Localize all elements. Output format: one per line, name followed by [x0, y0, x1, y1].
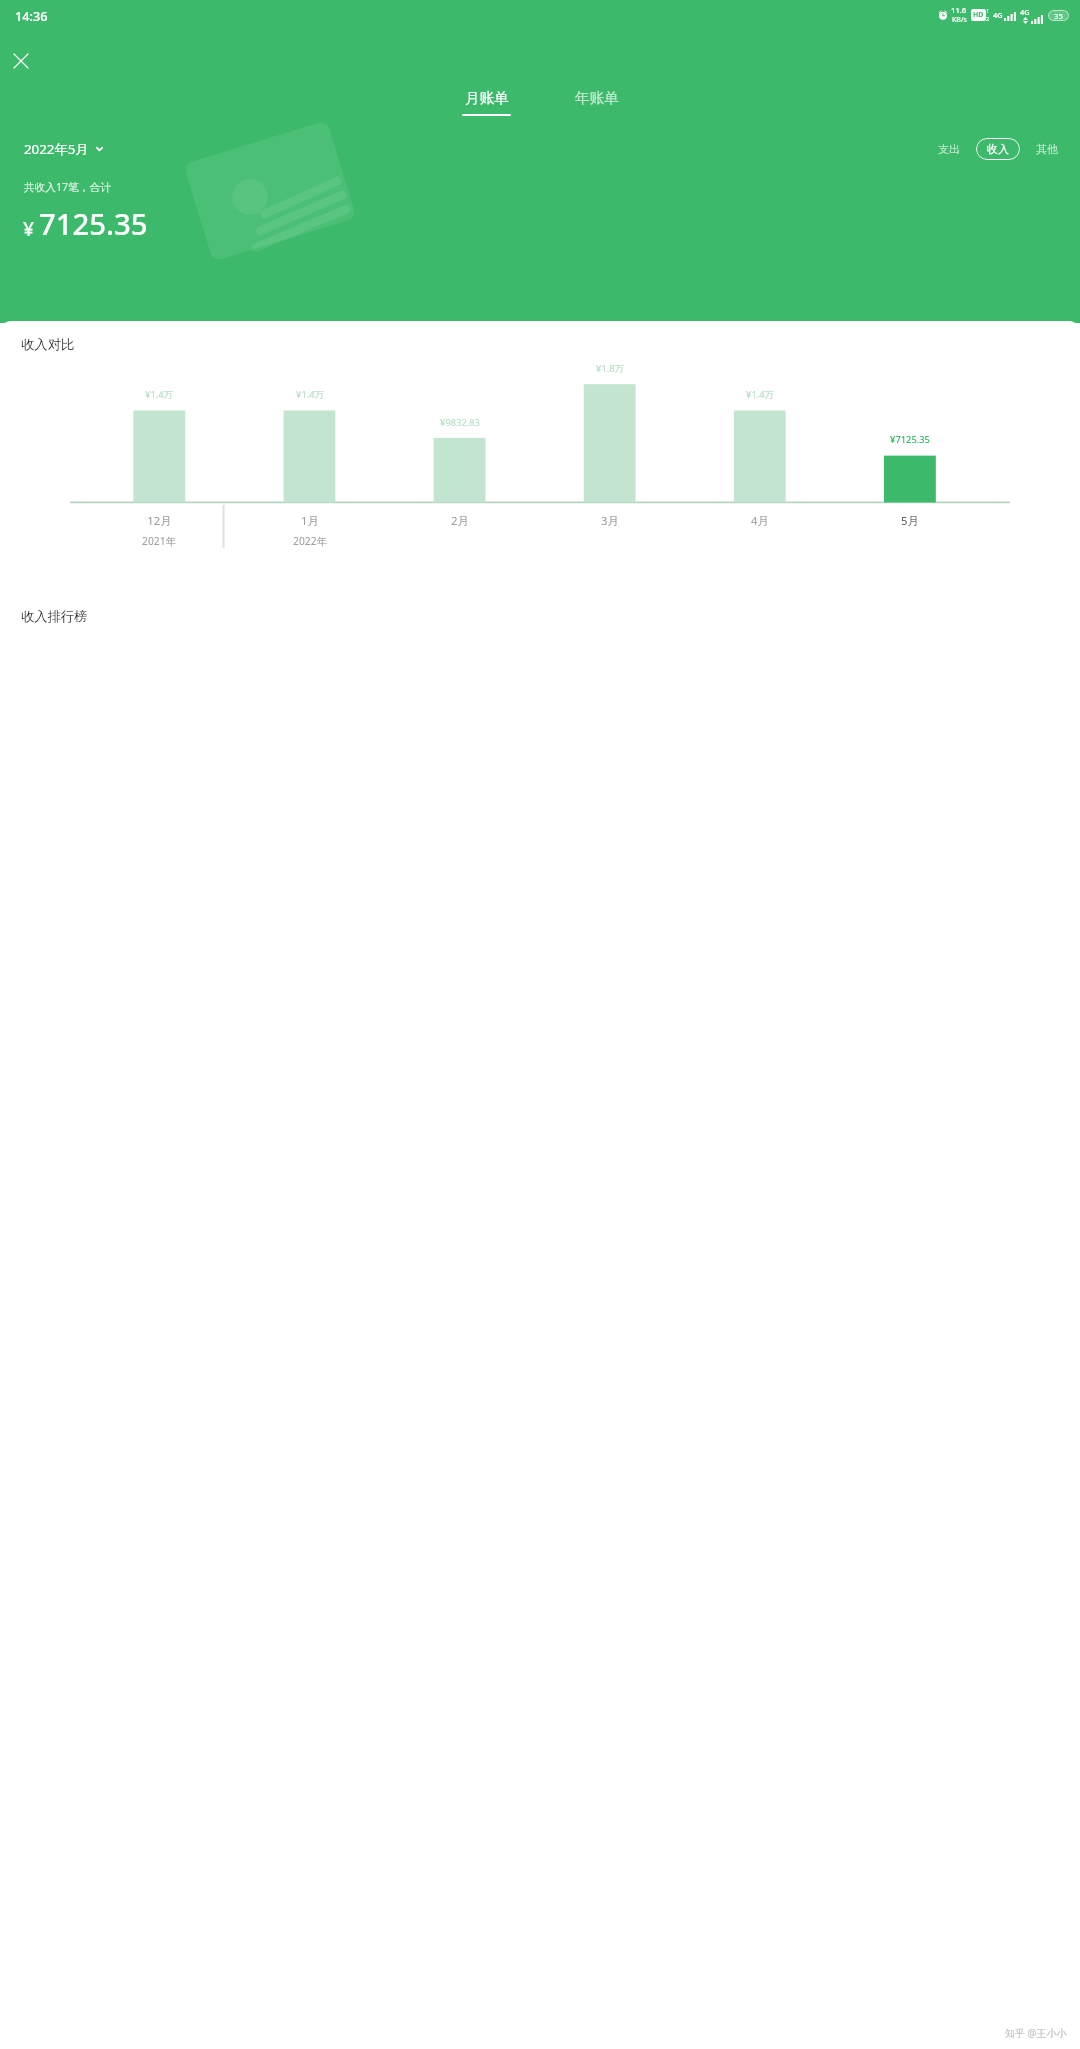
staticText: 收入: [987, 142, 1009, 156]
staticText: 4月: [751, 513, 769, 528]
staticText: 14:36: [15, 7, 48, 24]
button[interactable]: 其他: [1033, 137, 1061, 161]
staticText: 共收入17笔，合计: [24, 180, 111, 195]
staticText: 支出: [938, 142, 960, 156]
staticText: 收入对比: [21, 336, 75, 353]
staticText: 35: [1054, 11, 1063, 21]
staticText: 知乎 @王小小: [1005, 2026, 1067, 2040]
staticText: 1月: [301, 513, 319, 528]
staticText: KB/s: [952, 15, 967, 25]
staticText: 2月: [451, 513, 469, 528]
staticText: 月账单: [465, 89, 509, 107]
staticText: 12月: [147, 513, 172, 528]
staticText: 2021年: [142, 534, 176, 548]
button[interactable]: 年账单: [568, 87, 626, 118]
staticText: ¥1.4万: [746, 388, 774, 401]
staticText: 4G: [1020, 7, 1030, 17]
staticText: 2022年5月: [24, 140, 89, 158]
staticText: 2: [986, 15, 990, 23]
staticText: ¥1.4万: [145, 388, 173, 401]
staticText: 11.6: [951, 5, 967, 15]
staticText: ¥1.8万: [596, 362, 624, 375]
staticText: ¥9832.83: [440, 416, 480, 429]
staticText: HD: [973, 10, 984, 20]
button[interactable]: 2022年5月: [24, 140, 104, 158]
staticText: 2022年: [293, 534, 327, 548]
staticText: ¥7125.35: [890, 433, 930, 446]
button[interactable]: Close: [5, 45, 36, 76]
button[interactable]: 月账单: [455, 87, 518, 118]
staticText: 3月: [601, 513, 619, 528]
staticText: 收入排行榜: [21, 608, 88, 625]
staticText: 5月: [901, 513, 919, 528]
staticText: !: [987, 7, 989, 15]
staticText: 7125.35: [39, 204, 148, 244]
staticText: ¥1.4万: [296, 388, 324, 401]
staticText: ¥: [23, 215, 35, 241]
button[interactable]: 收入: [976, 138, 1020, 160]
staticText: 4G: [993, 10, 1003, 20]
button[interactable]: 支出: [935, 137, 963, 161]
staticText: 其他: [1036, 142, 1058, 156]
staticText: 年账单: [575, 89, 619, 107]
